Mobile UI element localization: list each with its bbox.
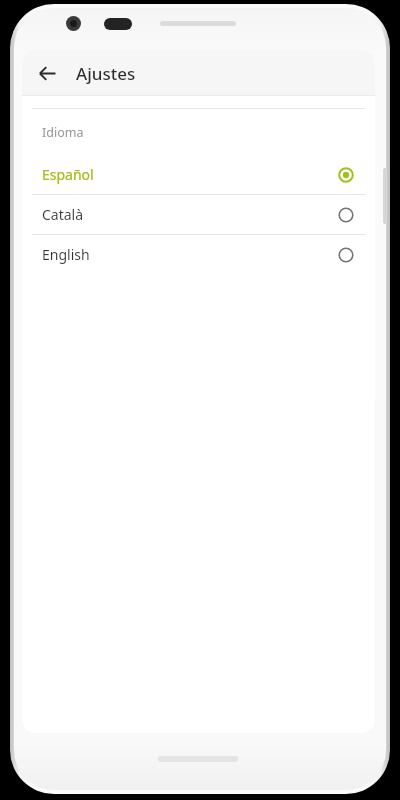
staticText: Català: [42, 205, 84, 224]
staticText: Idioma: [42, 124, 84, 141]
staticText: Español: [42, 165, 94, 184]
button[interactable]: Català: [22, 195, 375, 234]
button[interactable]: English: [22, 235, 375, 274]
staticText: Ajustes: [76, 62, 136, 85]
button[interactable]: Español: [22, 155, 375, 194]
button[interactable]: Back: [30, 56, 64, 90]
staticText: English: [42, 245, 90, 264]
